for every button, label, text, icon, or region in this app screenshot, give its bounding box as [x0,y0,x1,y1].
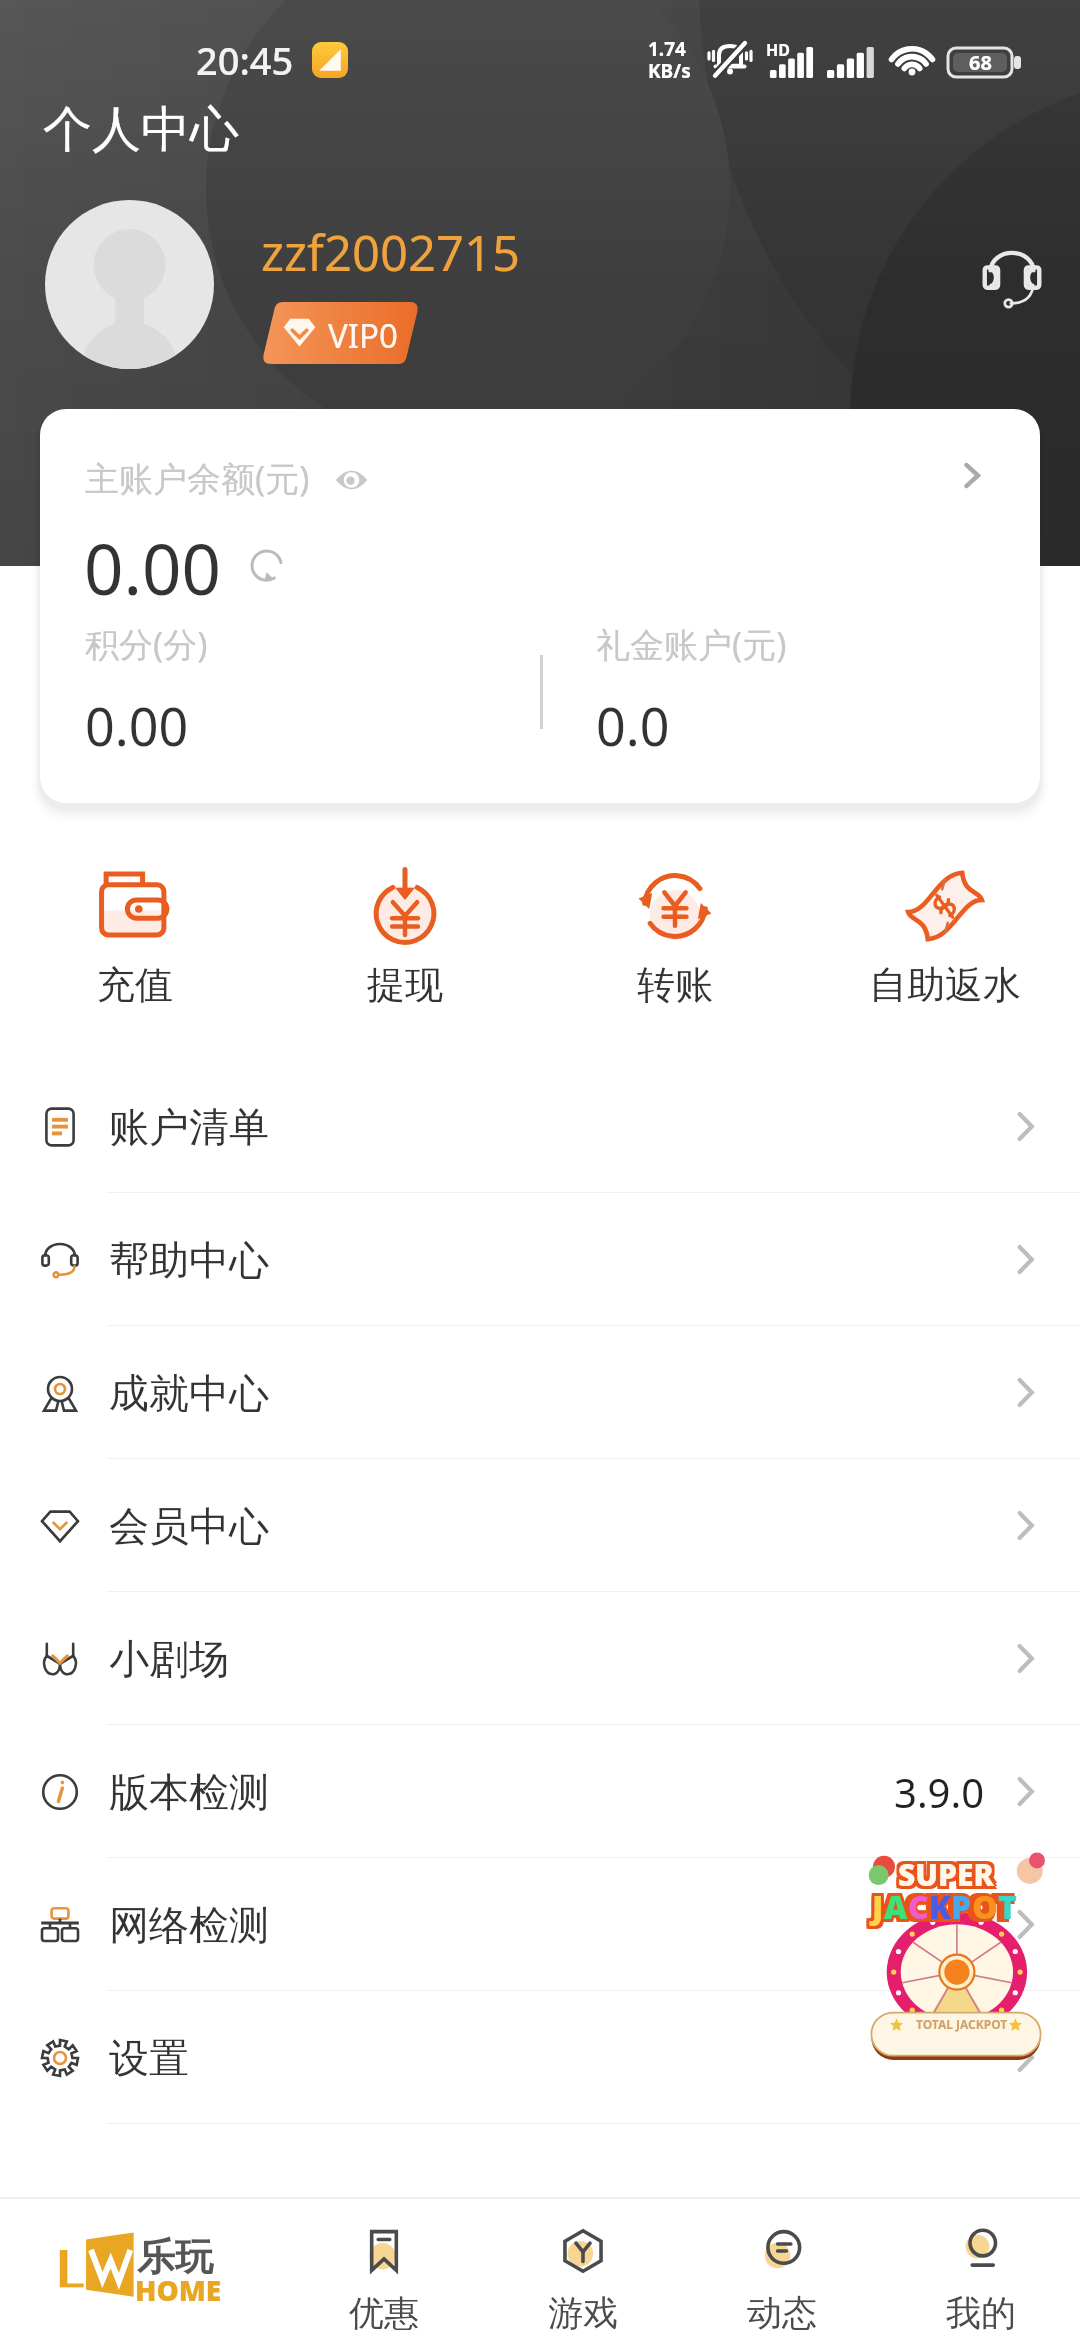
staticText: HOME [135,2271,222,2309]
staticText: JACKPOT [875,1888,1016,1932]
button[interactable]: Super Jackpot [866,1852,1046,2062]
staticText: J [872,1885,884,1929]
staticText: 0.00 [85,690,189,761]
staticText: C [908,1885,929,1929]
staticText: SUPER [901,1854,997,1895]
staticText: 版本检测 [109,1767,269,1817]
staticText: 设置 [109,2033,189,2083]
staticText: 主账户余额(元) [85,455,310,501]
button[interactable]: 账户清单 [0,1060,1080,1193]
staticText: 提现 [367,961,443,1009]
staticText: 会员中心 [109,1501,269,1551]
staticText: 3.9.0 [894,1765,985,1819]
staticText: JACKPOT [875,1882,1016,1926]
staticText: O [972,1885,998,1929]
button[interactable]: 主账户余额(元) [40,409,1040,803]
staticText: A [884,1885,908,1929]
staticText: SUPER [898,1857,994,1898]
button[interactable]: 我的 [881,2199,1080,2340]
staticText: SUPER [895,1851,991,1892]
staticText: 游戏 [548,2291,618,2335]
staticText: 充值 [97,961,173,1009]
staticText: VIP0 [328,313,398,358]
button[interactable]: 帮助中心 [0,1193,1080,1326]
button[interactable]: VIP0 [262,302,419,364]
staticText: JACKPOT [869,1882,1010,1926]
staticText: JACKPOT [869,1885,1010,1929]
staticText: 动态 [747,2291,817,2335]
staticText: 68 [969,49,992,76]
button[interactable]: 动态 [682,2199,881,2340]
staticText: T [998,1885,1017,1929]
staticText: 乐玩 [137,2233,213,2281]
button[interactable]: 网络检测 [0,1858,1080,1991]
staticText: SUPER [898,1854,994,1895]
staticText: 小剧场 [109,1634,229,1684]
staticText: 网络检测 [109,1900,269,1950]
staticText: 帮助中心 [109,1235,269,1285]
staticText: zzf2002715 [261,219,521,286]
button[interactable]: Customer service [983,250,1041,308]
button[interactable]: 自助返水 [810,868,1080,1009]
staticText: P [951,1885,972,1929]
staticText: SUPER [895,1857,991,1898]
button[interactable]: 小剧场 [0,1592,1080,1725]
staticText: 优惠 [349,2291,419,2335]
staticText: 20:45 [196,34,294,86]
button[interactable]: Avatar [45,200,214,369]
staticText: 礼金账户(元) [596,621,787,667]
button[interactable]: 会员中心 [0,1459,1080,1592]
staticText: JACKPOT [875,1885,1016,1929]
staticText: 账户清单 [109,1102,269,1152]
button[interactable]: LW Home [0,2199,284,2340]
staticText: 个人中心 [43,99,239,161]
staticText: 成就中心 [109,1368,269,1418]
staticText: 0.0 [596,690,670,761]
staticText: SUPER [898,1851,994,1892]
staticText: 我的 [946,2291,1016,2335]
staticText: 自助返水 [869,961,1021,1009]
staticText: SUPER [901,1857,997,1898]
staticText: JACKPOT [872,1888,1013,1932]
staticText: 0.00 [84,521,221,615]
staticText: JACKPOT [869,1888,1010,1932]
staticText: 积分(分) [85,621,208,667]
button[interactable]: 充值 [0,868,270,1009]
button[interactable]: 优惠 [284,2199,483,2340]
button[interactable]: 版本检测 [0,1725,1080,1858]
button[interactable]: 转账 [540,868,810,1009]
staticText: 1.74 KB/s [648,36,691,84]
staticText: TOTAL JACKPOT [916,2016,1008,2032]
button[interactable]: 设置 [0,1991,1080,2124]
button[interactable]: 游戏 [483,2199,682,2340]
staticText: JACKPOT [872,1882,1013,1926]
staticText: HD [766,39,790,61]
staticText: SUPER [895,1854,991,1895]
button[interactable]: 成就中心 [0,1326,1080,1459]
staticText: SUPER [901,1851,997,1892]
staticText: K [929,1885,951,1929]
staticText: 转账 [637,961,713,1009]
button[interactable]: 提现 [270,868,540,1009]
